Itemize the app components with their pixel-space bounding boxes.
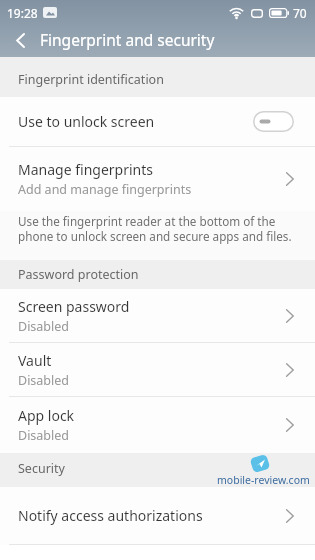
staticText: 19:28 (7, 5, 38, 21)
button[interactable] (0, 25, 40, 57)
button[interactable]: Use to unlock screen (0, 97, 315, 146)
staticText: App lock (18, 406, 75, 425)
staticText: Security (18, 460, 65, 477)
staticText: Screen password (18, 297, 130, 316)
staticText: Fingerprint identification (18, 71, 164, 88)
staticText: Fingerprint and security (40, 29, 215, 50)
staticText: Vault (18, 351, 52, 370)
staticText: 70 (293, 5, 307, 21)
staticText: Manage fingerprints (18, 160, 153, 179)
button[interactable]: Screen password (0, 289, 315, 342)
staticText: Use to unlock screen (18, 112, 155, 131)
button[interactable]: App lock (0, 397, 315, 453)
staticText: mobile-review.com (217, 473, 310, 487)
staticText: Use the fingerprint reader at the bottom… (18, 213, 292, 244)
staticText: Disabled (18, 372, 70, 389)
button[interactable]: Manage fingerprints (0, 147, 315, 211)
button[interactable]: Vault (0, 343, 315, 396)
button[interactable]: Notify access authorizations (0, 487, 315, 544)
staticText: Password protection (18, 266, 139, 283)
staticText: Disabled (18, 427, 70, 444)
button[interactable] (253, 111, 294, 132)
staticText: Notify access authorizations (18, 506, 203, 525)
staticText: Add and manage fingerprints (18, 181, 192, 198)
staticText: Disabled (18, 318, 70, 335)
